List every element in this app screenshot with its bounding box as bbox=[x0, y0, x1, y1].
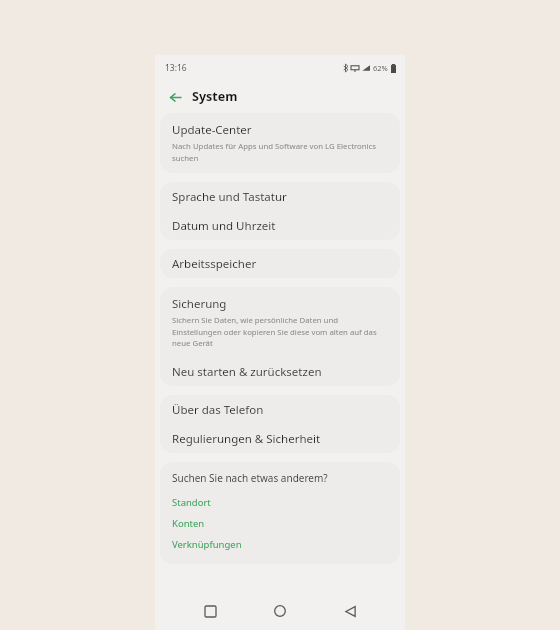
staticText: Update-Center bbox=[172, 122, 252, 138]
staticText: Regulierungen & Sicherheit bbox=[172, 431, 321, 447]
button[interactable]: Arbeitsspeicher bbox=[160, 249, 400, 278]
staticText: 62% bbox=[373, 63, 388, 73]
button[interactable]: Sicherung bbox=[160, 287, 400, 358]
button[interactable]: Recent apps bbox=[195, 596, 225, 626]
staticText: Konten bbox=[172, 517, 205, 530]
staticText: Datum und Uhrzeit bbox=[172, 218, 276, 234]
button[interactable]: Standort bbox=[160, 492, 400, 513]
button[interactable]: Back bbox=[335, 596, 365, 626]
staticText: Sicherung bbox=[172, 296, 227, 312]
staticText: Standort bbox=[172, 496, 211, 509]
staticText: System bbox=[192, 88, 238, 105]
staticText: Über das Telefon bbox=[172, 402, 264, 418]
button[interactable]: Konten bbox=[160, 513, 400, 534]
button[interactable]: Verknüpfungen bbox=[160, 534, 400, 555]
button[interactable]: Datum und Uhrzeit bbox=[160, 211, 400, 240]
button[interactable]: Update-Center bbox=[160, 113, 400, 173]
button[interactable]: Back bbox=[164, 86, 186, 108]
button[interactable]: Home bbox=[265, 596, 295, 626]
button[interactable]: Neu starten & zurücksetzen bbox=[160, 358, 400, 386]
staticText: 13:16 bbox=[165, 62, 187, 74]
button[interactable]: Sprache und Tastatur bbox=[160, 182, 400, 211]
button[interactable]: Regulierungen & Sicherheit bbox=[160, 424, 400, 453]
button[interactable]: Über das Telefon bbox=[160, 395, 400, 424]
staticText: Suchen Sie nach etwas anderem? bbox=[172, 471, 328, 485]
staticText: Sprache und Tastatur bbox=[172, 189, 287, 205]
staticText: Sichern Sie Daten, wie persönliche Daten… bbox=[172, 315, 386, 348]
staticText: Neu starten & zurücksetzen bbox=[172, 364, 322, 380]
staticText: Verknüpfungen bbox=[172, 538, 242, 551]
staticText: Nach Updates für Apps und Software von L… bbox=[172, 141, 386, 163]
staticText: Arbeitsspeicher bbox=[172, 256, 257, 272]
